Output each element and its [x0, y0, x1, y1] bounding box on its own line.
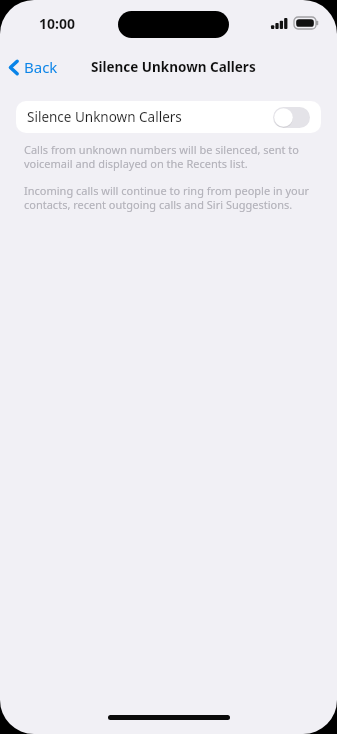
staticText: Silence Unknown Callers — [27, 108, 273, 126]
staticText: 10:00 — [39, 14, 75, 33]
staticText: Calls from unknown numbers will be silen… — [24, 142, 313, 171]
staticText: Back — [24, 57, 58, 77]
button[interactable]: Back — [0, 53, 66, 81]
staticText: Incoming calls will continue to ring fro… — [24, 183, 313, 212]
staticText: Silence Unknown Callers — [91, 58, 256, 76]
button[interactable]: Silence Unknown Callers toggle, off — [273, 107, 310, 128]
button[interactable]: Silence Unknown Callers — [16, 101, 321, 133]
